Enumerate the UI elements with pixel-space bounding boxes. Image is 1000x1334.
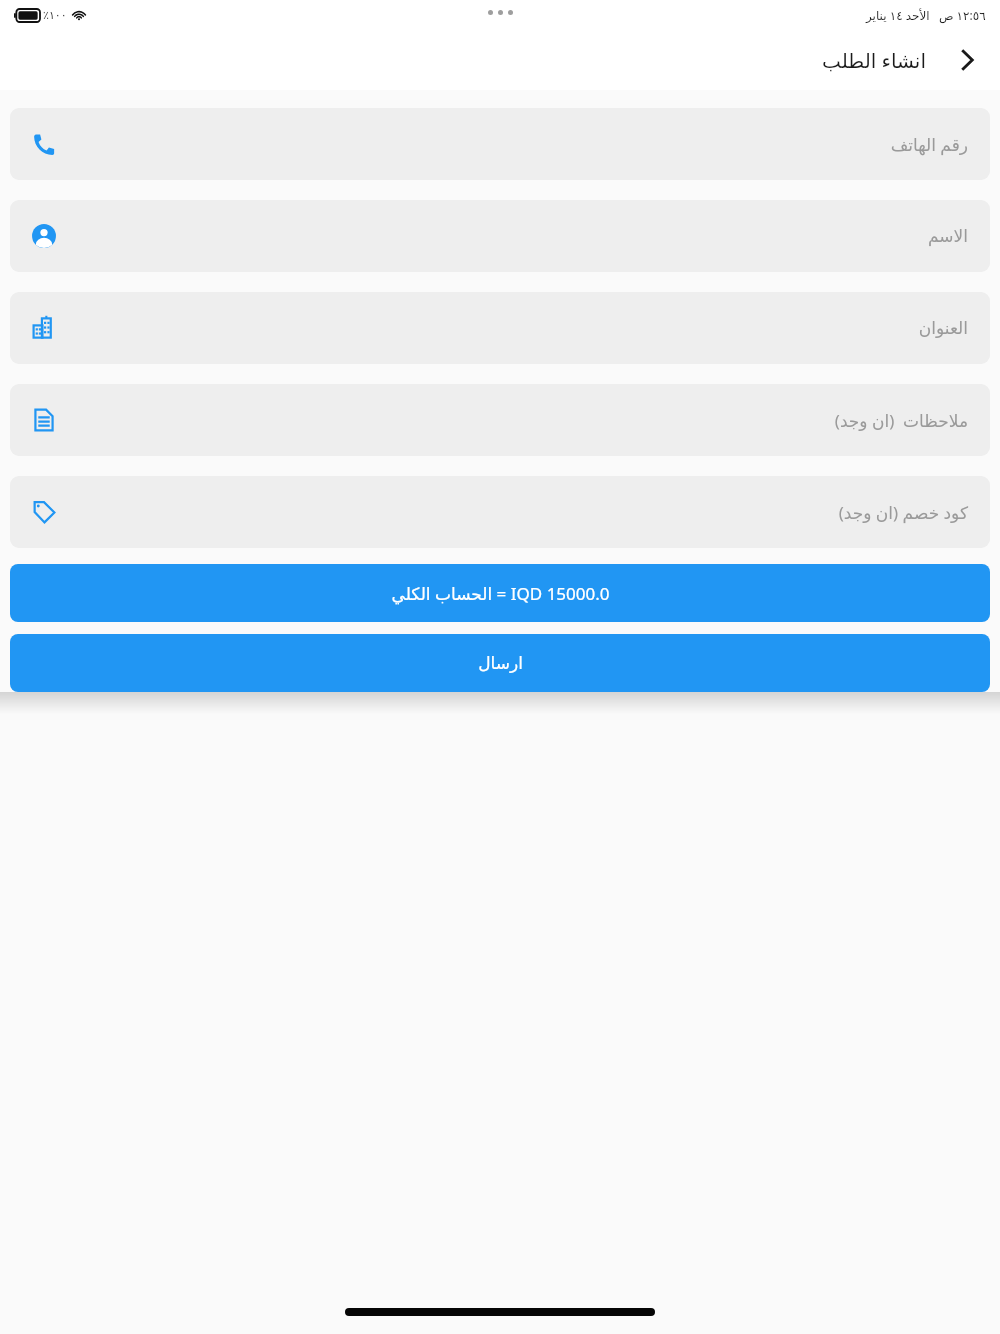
staticText: رقم الهاتف <box>890 133 968 156</box>
staticText: ٪١٠٠ <box>43 9 67 22</box>
staticText: ارسال <box>478 653 523 673</box>
staticText: العنوان <box>918 318 968 338</box>
button[interactable]: الاسم <box>10 200 990 272</box>
button[interactable]: ملاحظات (ان وجد) <box>10 384 990 456</box>
button[interactable]: رقم الهاتف <box>10 108 990 180</box>
staticText: ملاحظات (ان وجد) <box>834 409 968 432</box>
button[interactable]: ارسال <box>10 634 990 692</box>
staticText: ١٢:٥٦ ص الأحد ١٤ يناير <box>866 7 986 23</box>
staticText: الحساب الكلي = IQD 15000.0 <box>391 582 610 605</box>
staticText: كود خصم (ان وجد) <box>838 501 968 524</box>
button[interactable]: Back <box>944 37 990 83</box>
staticText: الاسم <box>928 226 968 246</box>
button[interactable]: الحساب الكلي = IQD 15000.0 <box>10 564 990 622</box>
staticText: انشاء الطلب <box>822 47 926 74</box>
button[interactable]: كود خصم (ان وجد) <box>10 476 990 548</box>
button[interactable]: العنوان <box>10 292 990 364</box>
